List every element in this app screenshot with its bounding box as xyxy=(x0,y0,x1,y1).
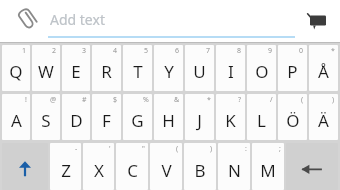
staticText: Y xyxy=(164,60,174,83)
staticText: ; xyxy=(279,144,281,154)
staticText: 7 xyxy=(206,46,211,56)
staticText: ! xyxy=(25,95,27,105)
staticText: @ xyxy=(50,95,57,105)
button[interactable]: ( xyxy=(150,143,182,190)
staticText: / xyxy=(270,95,273,105)
staticText: N xyxy=(228,159,241,182)
staticText: X xyxy=(94,159,104,182)
button[interactable]: ( xyxy=(278,94,307,140)
button[interactable]: @ xyxy=(32,94,60,140)
staticText: Å xyxy=(318,60,329,83)
staticText: V xyxy=(161,159,172,182)
staticText: ( xyxy=(301,95,304,105)
button[interactable]: * xyxy=(185,94,214,140)
staticText: 0 xyxy=(299,46,304,56)
staticText: Q xyxy=(9,60,23,83)
staticText: 9 xyxy=(268,46,273,56)
button[interactable]: 6 xyxy=(154,45,183,91)
staticText: R xyxy=(101,60,112,83)
staticText: ' xyxy=(109,144,111,154)
staticText: O xyxy=(255,60,269,83)
staticText: A xyxy=(11,109,22,132)
staticText: K xyxy=(225,109,236,132)
button[interactable]: & xyxy=(154,94,183,140)
staticText: 6 xyxy=(175,46,180,56)
staticText: ) xyxy=(210,144,213,154)
button[interactable]: Attach xyxy=(12,6,42,36)
button[interactable]: Add text xyxy=(48,4,295,38)
staticText: " xyxy=(142,144,145,154)
button[interactable]: * xyxy=(309,45,338,91)
button[interactable]: ' xyxy=(83,143,114,190)
staticText: B xyxy=(194,159,206,182)
staticText: Ö xyxy=(286,109,300,132)
button[interactable]: ! xyxy=(2,94,30,140)
staticText: 4 xyxy=(113,46,118,56)
staticText: Add text xyxy=(50,10,105,29)
button[interactable]: ) xyxy=(309,94,338,140)
staticText: U xyxy=(193,60,206,83)
staticText: & xyxy=(174,95,180,105)
button[interactable]: 0 xyxy=(278,45,307,91)
button[interactable]: : xyxy=(218,143,250,190)
staticText: G xyxy=(131,109,144,132)
button[interactable]: / xyxy=(247,94,276,140)
button[interactable]: 9 xyxy=(247,45,276,91)
button[interactable]: 4 xyxy=(92,45,121,91)
staticText: % xyxy=(143,95,149,105)
staticText: W xyxy=(38,60,54,83)
staticText: Z xyxy=(61,159,71,182)
staticText: J xyxy=(197,109,202,132)
staticText: ( xyxy=(176,144,179,154)
staticText: ) xyxy=(332,95,335,105)
staticText: 3 xyxy=(82,46,87,56)
button[interactable]: " xyxy=(116,143,148,190)
staticText: C xyxy=(127,159,138,182)
staticText: P xyxy=(287,60,298,83)
staticText: $ xyxy=(113,95,118,105)
button[interactable]: 1 xyxy=(2,45,30,91)
button[interactable]: % xyxy=(123,94,152,140)
button[interactable]: 3 xyxy=(62,45,90,91)
staticText: M xyxy=(260,159,276,182)
staticText: - xyxy=(75,144,78,154)
staticText: * xyxy=(331,46,335,56)
staticText: E xyxy=(71,60,81,83)
staticText: 2 xyxy=(52,46,57,56)
staticText: # xyxy=(82,95,87,105)
staticText: L xyxy=(257,109,266,132)
button[interactable]: 8 xyxy=(216,45,245,91)
staticText: D xyxy=(70,109,83,132)
button[interactable]: Emoji xyxy=(300,5,332,37)
button[interactable]: # xyxy=(62,94,90,140)
staticText: F xyxy=(102,109,111,132)
staticText: ? xyxy=(238,95,242,105)
staticText: H xyxy=(162,109,175,132)
button[interactable]: 7 xyxy=(185,45,214,91)
staticText: 5 xyxy=(144,46,149,56)
button[interactable]: - xyxy=(50,143,81,190)
staticText: : xyxy=(245,144,247,154)
button[interactable]: Shift xyxy=(2,143,48,190)
staticText: * xyxy=(207,95,211,105)
button[interactable]: ; xyxy=(252,143,284,190)
button[interactable]: ) xyxy=(184,143,216,190)
staticText: Ä xyxy=(318,109,329,132)
button[interactable]: $ xyxy=(92,94,121,140)
staticText: I xyxy=(228,60,234,83)
staticText: T xyxy=(133,60,143,83)
staticText: 8 xyxy=(237,46,242,56)
button[interactable]: Backspace xyxy=(286,143,338,190)
button[interactable]: ? xyxy=(216,94,245,140)
button[interactable]: 2 xyxy=(32,45,60,91)
staticText: 1 xyxy=(22,46,27,56)
staticText: S xyxy=(41,109,51,132)
button[interactable]: 5 xyxy=(123,45,152,91)
